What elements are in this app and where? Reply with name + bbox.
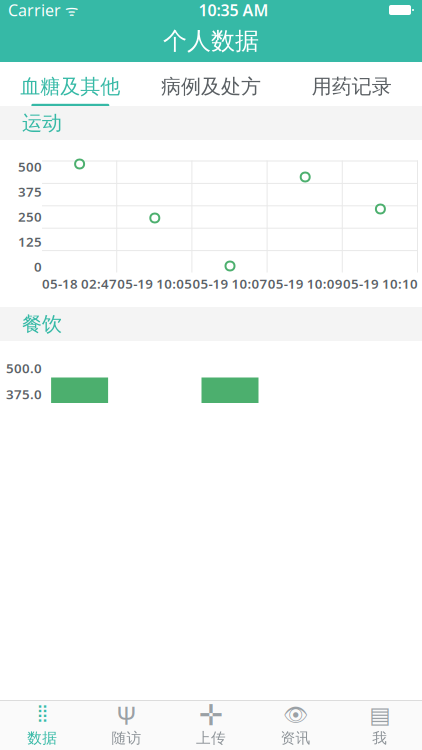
button[interactable]: 👁 [253, 701, 338, 750]
staticText: ✛ [198, 698, 223, 732]
staticText: 05-19 10:10 [343, 275, 418, 292]
staticText: 0 [34, 258, 42, 275]
staticText: 餐饮 [22, 312, 62, 336]
staticText: 病例及处方 [161, 74, 261, 99]
staticText: 05-19 10:05 [117, 689, 192, 707]
staticText: 我 [372, 729, 387, 747]
staticText: 用药记录 [312, 74, 392, 99]
staticText: 05-19 10:09 [268, 275, 343, 292]
staticText: 随访 [112, 729, 142, 747]
button[interactable]: Ψ [84, 701, 169, 750]
staticText: 375 [18, 183, 42, 200]
staticText: 375.0 [6, 385, 42, 403]
staticText: 05-19 10:07 [192, 275, 267, 292]
staticText: 05-18 02:47 [42, 689, 117, 707]
staticText: 05-19 10:09 [268, 689, 343, 707]
staticText: 250 [18, 208, 42, 225]
button[interactable]: 病例及处方 [141, 62, 281, 106]
staticText: ᯤ [61, 0, 78, 20]
staticText: Ψ [116, 698, 137, 732]
button[interactable]: 血糖及其他 [0, 62, 141, 106]
staticText: 10:35 AM [198, 0, 268, 21]
staticText: ▤ [369, 702, 390, 728]
button[interactable]: 用药记录 [281, 62, 422, 106]
staticText: 运动 [22, 111, 62, 135]
staticText: 125 [18, 233, 42, 250]
staticText: 05-18 02:47 [42, 275, 117, 292]
staticText: 👁 [283, 704, 308, 726]
button[interactable]: ▤ [338, 701, 422, 750]
staticText: 血糖及其他 [20, 74, 120, 99]
staticText: 500 [18, 158, 42, 175]
staticText: 500.0 [6, 359, 42, 377]
staticText: ⦙⦙ [37, 704, 47, 726]
staticText: 上传 [196, 729, 226, 747]
button[interactable]: ✛ [169, 701, 253, 750]
staticText: 05-19 10:05 [117, 275, 192, 292]
button[interactable]: ⦙⦙ [0, 701, 84, 750]
staticText: 05-19 10:10 [343, 689, 418, 707]
staticText: 个人数据 [163, 26, 259, 56]
staticText: Carrier [8, 0, 61, 21]
staticText: 资讯 [280, 729, 310, 747]
staticText: 数据 [27, 729, 57, 747]
staticText: 05-19 10:07 [192, 689, 267, 707]
